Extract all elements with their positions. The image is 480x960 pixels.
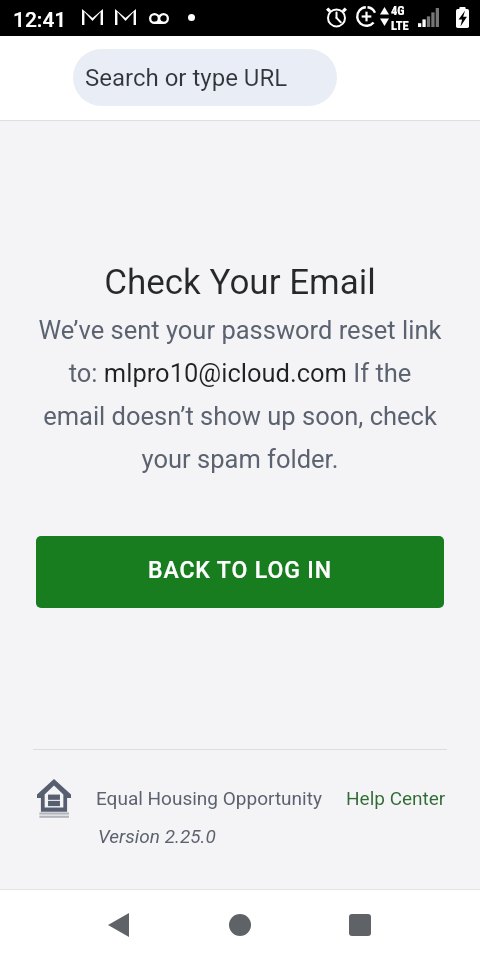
staticText: LTE (391, 18, 409, 33)
staticText: Check Your Email (0, 262, 480, 303)
staticText: Search or type URL (85, 64, 288, 92)
staticText: Help Center (346, 787, 446, 809)
button[interactable]: Recent apps (334, 890, 386, 960)
staticText: 4G (391, 3, 405, 18)
button[interactable]: Home (214, 890, 266, 960)
staticText: We’ve sent your password reset link to: … (36, 315, 444, 474)
staticText: Equal Housing Opportunity (96, 787, 322, 809)
button[interactable]: BACK TO LOG IN (36, 536, 444, 608)
button[interactable]: Help Center (346, 781, 446, 815)
staticText: 12:41 (13, 8, 67, 33)
staticText: Version 2.25.0 (98, 825, 216, 847)
staticText: BACK TO LOG IN (148, 557, 332, 584)
button[interactable]: Back (92, 890, 144, 960)
button[interactable]: Search or type URL (73, 49, 337, 106)
